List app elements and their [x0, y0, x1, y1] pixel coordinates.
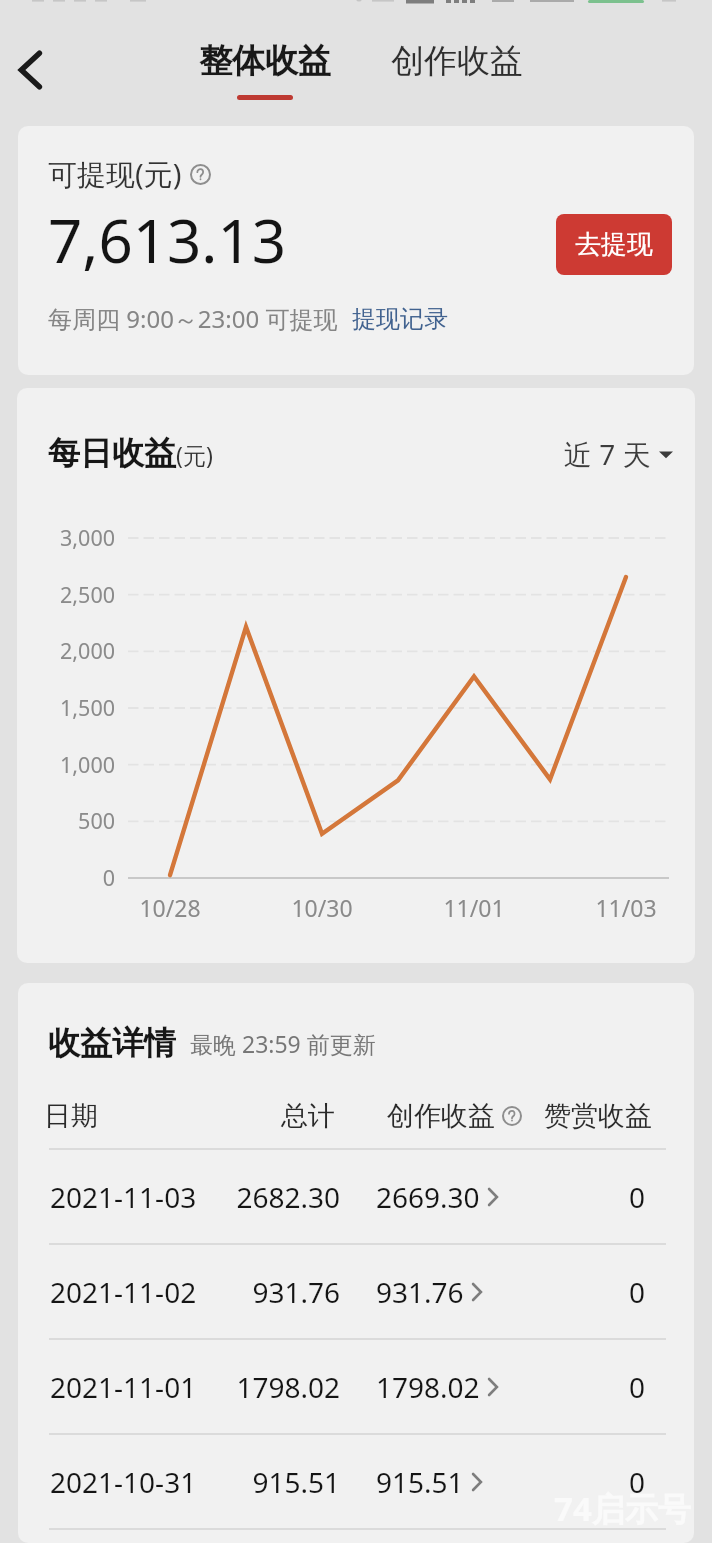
- staticText: 总计: [18, 1099, 335, 1133]
- staticText: 日期: [44, 1099, 98, 1133]
- staticText: 11/01: [424, 892, 524, 923]
- button[interactable]: Back: [2, 41, 60, 99]
- button[interactable]: 整体收益: [180, 40, 350, 100]
- staticText: 2021-10-31: [50, 1463, 197, 1501]
- staticText: 0: [18, 1178, 645, 1216]
- staticText: 10/28: [120, 892, 220, 923]
- staticText: 整体收益: [199, 40, 331, 82]
- staticText: 1798.02: [18, 1368, 340, 1406]
- staticText: 每日收益: [48, 433, 176, 473]
- staticText: 创作收益: [387, 1099, 495, 1133]
- staticText: 2,500: [17, 580, 115, 609]
- staticText: 最晚 23:59 前更新: [190, 1028, 376, 1059]
- staticText: 每周四 9:00～23:00 可提现: [48, 302, 338, 335]
- staticText: 2021-11-01: [50, 1368, 197, 1406]
- staticText: 74启示号: [554, 1486, 691, 1531]
- button[interactable]: 2021-11-01: [18, 1340, 694, 1433]
- staticText: 近 7 天: [564, 435, 651, 473]
- staticText: 7,613.13: [48, 199, 287, 281]
- staticText: 10/30: [272, 892, 372, 923]
- staticText: 3,000: [17, 523, 115, 552]
- staticText: 0: [18, 1273, 645, 1311]
- staticText: 500: [17, 806, 115, 835]
- staticText: 2669.30: [376, 1178, 480, 1216]
- staticText: 2021-11-03: [50, 1178, 197, 1216]
- staticText: 1,000: [17, 750, 115, 779]
- staticText: 1,500: [17, 693, 115, 722]
- staticText: 11/03: [576, 892, 676, 923]
- staticText: 0: [18, 1368, 645, 1406]
- staticText: 2021-11-02: [50, 1273, 197, 1311]
- button[interactable]: 2021-11-02: [18, 1245, 694, 1338]
- staticText: 2,000: [17, 636, 115, 665]
- staticText: 2682.30: [18, 1178, 340, 1216]
- staticText: 931.76: [18, 1273, 340, 1311]
- staticText: 915.51: [18, 1463, 340, 1501]
- button[interactable]: 去提现: [556, 214, 672, 275]
- staticText: (元): [176, 439, 213, 470]
- button[interactable]: 2021-11-03: [18, 1150, 694, 1243]
- staticText: 931.76: [376, 1273, 464, 1311]
- staticText: 收益详情: [48, 1023, 176, 1063]
- button[interactable]: 近 7 天: [564, 435, 673, 473]
- button[interactable]: 创作收益: [372, 40, 542, 82]
- staticText: 赞赏收益: [18, 1099, 652, 1133]
- button[interactable]: 2021-10-31: [18, 1435, 694, 1528]
- staticText: 可提现(元): [48, 154, 182, 194]
- staticText: 0: [17, 863, 115, 892]
- staticText: 创作收益: [391, 40, 523, 82]
- staticText: 去提现: [575, 228, 653, 261]
- staticText: 915.51: [376, 1463, 464, 1501]
- staticText: 1798.02: [376, 1368, 480, 1406]
- button[interactable]: 提现记录: [352, 304, 448, 334]
- staticText: 0: [18, 1463, 645, 1501]
